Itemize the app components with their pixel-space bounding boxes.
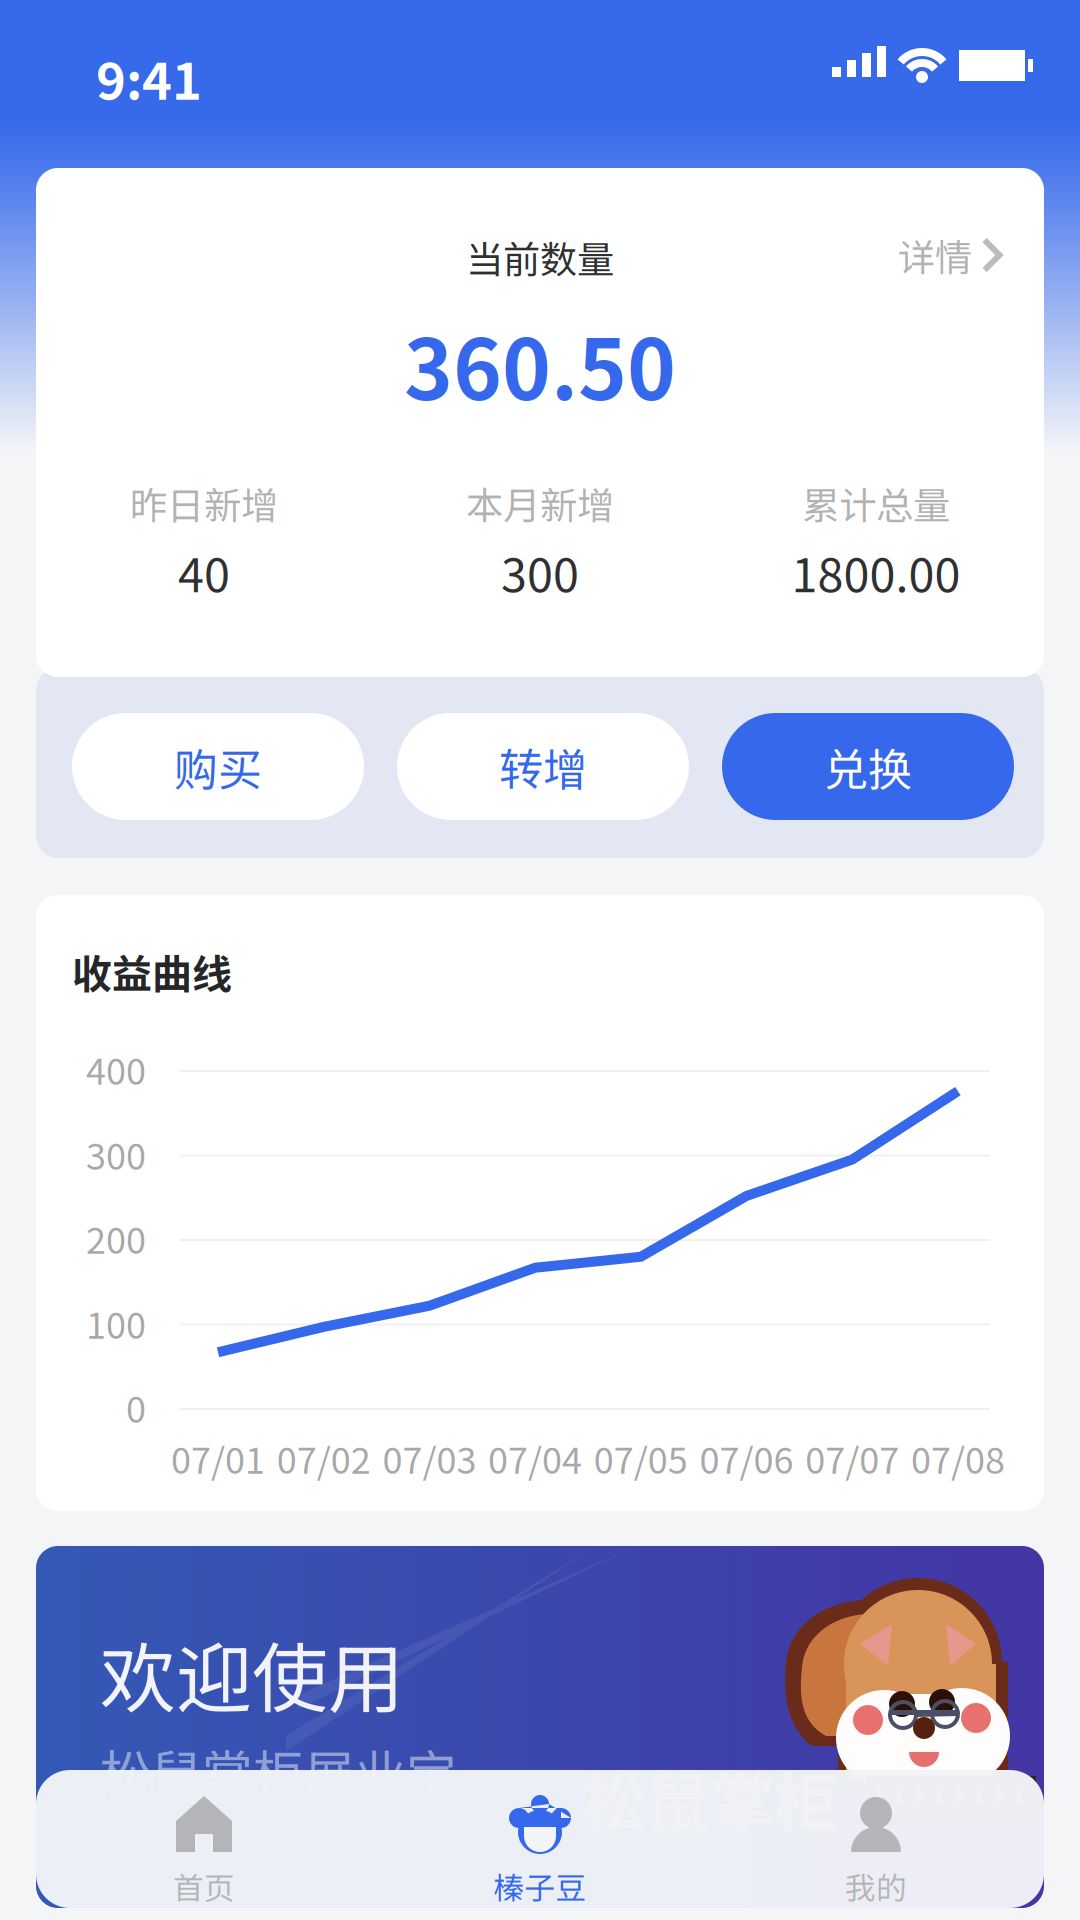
button[interactable]: 购买 [72,713,364,820]
button[interactable]: 详情 [884,214,1016,296]
staticText: 首页 [173,1864,235,1908]
staticText: 07/03 [382,1432,476,1484]
staticText: 07/04 [488,1432,582,1484]
staticText: 360.50 [404,304,676,424]
staticText: 购买 [174,735,262,798]
button[interactable]: 榛子豆 [372,1770,708,1908]
staticText: 07/02 [277,1432,371,1484]
staticText: 100 [86,1297,146,1349]
button[interactable]: 转增 [397,713,689,820]
staticText: 松鼠掌柜 [582,1752,838,1845]
staticText: 07/05 [594,1432,688,1484]
staticText: 07/06 [699,1432,793,1484]
staticText: 收益曲线 [72,942,232,1000]
staticText: 昨日新增 [130,476,278,530]
staticText: 300 [501,538,579,606]
staticText: 当前数量 [466,230,614,284]
staticText: 40 [178,538,230,606]
staticText: 松鼠掌柜展业宝 [100,1734,457,1807]
staticText: 200 [86,1212,146,1264]
staticText: 300 [86,1128,146,1180]
staticText: 兑换 [824,735,912,798]
staticText: 榛子豆 [493,1864,586,1908]
button[interactable]: 我的 [708,1770,1044,1908]
staticText: 欢迎使用 [100,1618,404,1728]
staticText: 转增 [499,735,587,798]
staticText: 详情 [898,228,972,282]
button[interactable]: 兑换 [722,713,1014,820]
button[interactable]: 首页 [36,1770,372,1908]
staticText: 累计总量 [802,476,950,530]
staticText: 07/08 [911,1432,1005,1484]
staticText: 0 [126,1381,146,1433]
staticText: 我的 [845,1864,907,1908]
staticText: 400 [86,1043,146,1095]
staticText: 07/01 [171,1432,265,1484]
staticText: 本月新增 [466,476,614,530]
staticText: 07/07 [805,1432,899,1484]
staticText: 1800.00 [791,538,960,606]
staticText: 9:41 [96,41,202,114]
